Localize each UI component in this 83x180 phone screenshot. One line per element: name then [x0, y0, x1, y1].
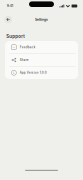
staticText: Share	[20, 58, 29, 62]
button[interactable]: App Version 1.0.0	[5, 67, 78, 79]
staticText: App Version 1.0.0	[20, 71, 47, 75]
staticText: 9:41	[7, 4, 13, 8]
staticText: Support	[6, 34, 25, 39]
button[interactable]: Feedback	[5, 41, 78, 53]
button[interactable]: Share	[5, 54, 78, 66]
button[interactable]: Back	[3, 14, 14, 25]
staticText: Feedback	[20, 45, 36, 49]
staticText: Settings	[35, 17, 48, 21]
